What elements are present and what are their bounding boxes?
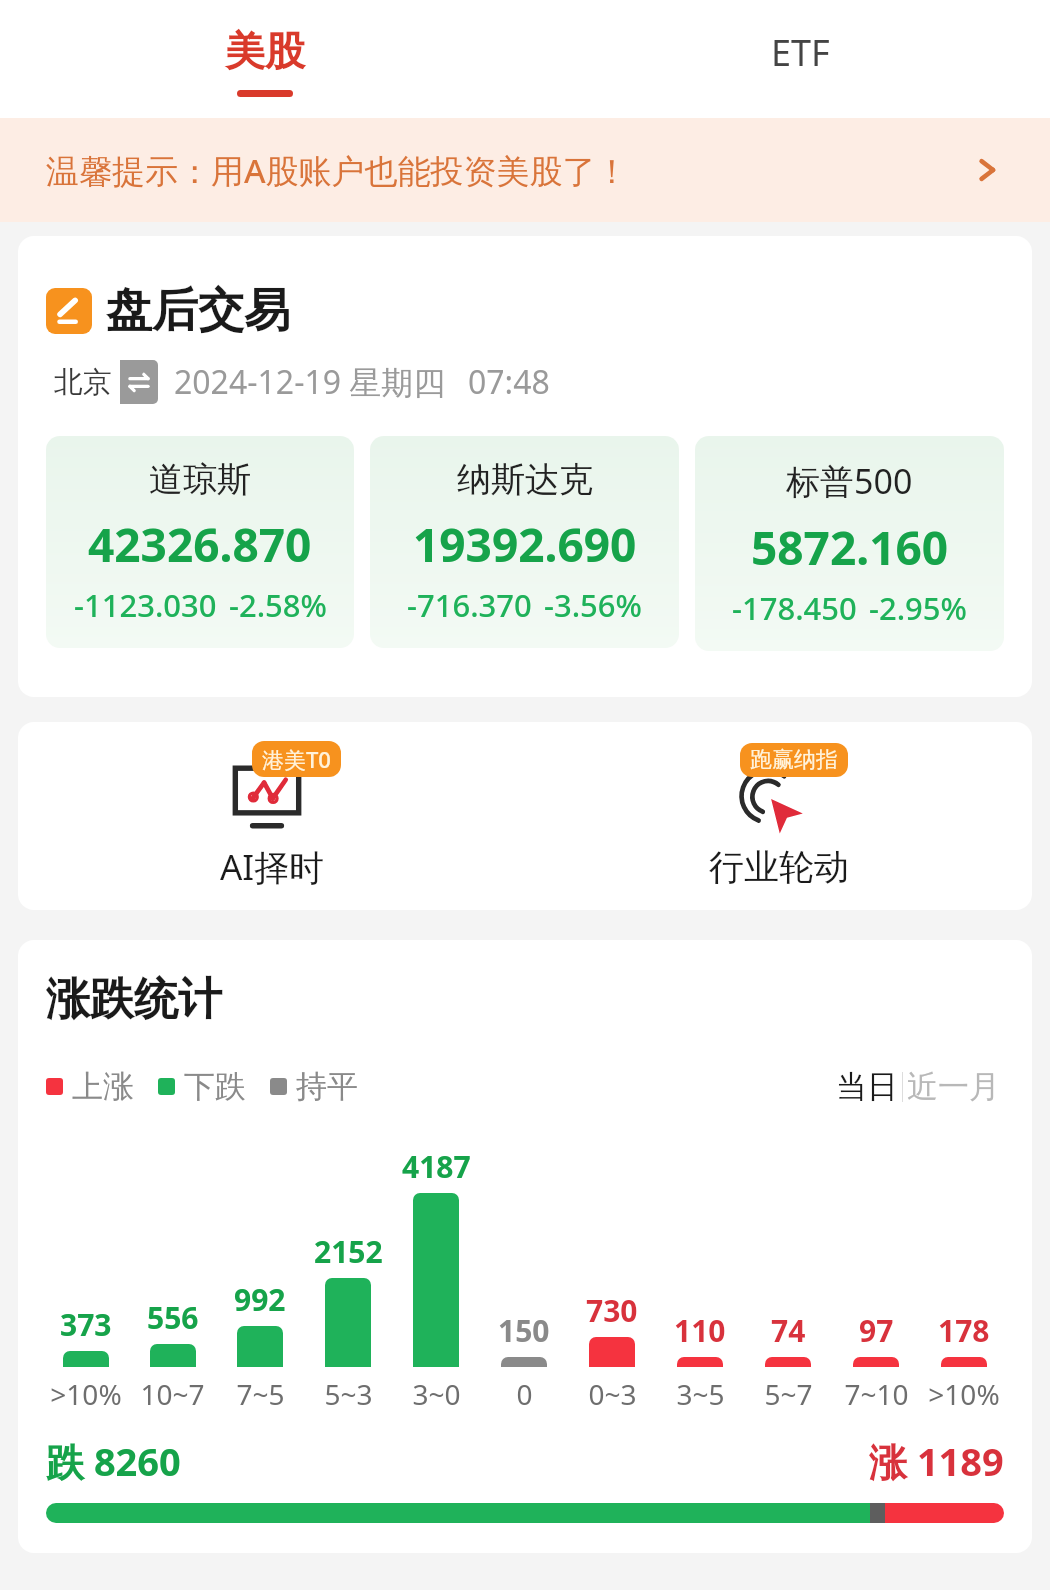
staticText: 42326.870 xyxy=(88,513,312,576)
staticText: 3~0 xyxy=(412,1375,461,1413)
staticText: 纳斯达克 xyxy=(457,458,593,501)
staticText: 5~3 xyxy=(324,1375,373,1413)
staticText: -178.450 xyxy=(732,587,857,629)
staticText: 近一月 xyxy=(907,1067,1000,1106)
staticText: 10~7 xyxy=(140,1375,205,1413)
staticText: 150 xyxy=(498,1310,550,1351)
staticText: 美股 xyxy=(225,26,305,76)
staticText: -716.370 xyxy=(407,584,532,626)
staticText: -2.95% xyxy=(869,587,967,629)
staticText: 0~3 xyxy=(588,1375,637,1413)
staticText: 7~10 xyxy=(844,1375,909,1413)
staticText: -2.58% xyxy=(229,584,327,626)
button[interactable]: 标普500 xyxy=(695,436,1004,651)
staticText: >10% xyxy=(50,1375,122,1413)
staticText: 标普500 xyxy=(786,458,913,504)
staticText: 7~5 xyxy=(236,1375,285,1413)
button[interactable]: ETF xyxy=(715,0,885,90)
staticText: 涨跌统计 xyxy=(46,972,222,1027)
staticText: 北京 xyxy=(54,364,112,401)
staticText: 道琼斯 xyxy=(149,458,251,501)
button[interactable]: 跑赢纳指 xyxy=(525,722,1032,910)
staticText: 跌 8260 xyxy=(46,1435,181,1487)
staticText: 当日 xyxy=(836,1067,898,1106)
staticText: 178 xyxy=(938,1310,990,1351)
staticText: 上涨 xyxy=(72,1067,134,1106)
staticText: 0 xyxy=(516,1375,533,1413)
button[interactable]: 北京 xyxy=(46,360,158,404)
staticText: 730 xyxy=(586,1290,638,1331)
staticText: 盘后交易 xyxy=(106,282,290,340)
button[interactable]: 温馨提示：用A股账户也能投资美股了！ xyxy=(0,118,1050,222)
button[interactable]: 港美T0 xyxy=(18,722,525,910)
button[interactable]: 纳斯达克 xyxy=(370,436,679,648)
staticText: 556 xyxy=(147,1297,199,1338)
staticText: 4187 xyxy=(402,1146,471,1187)
staticText: 373 xyxy=(60,1304,112,1345)
staticText: 5872.160 xyxy=(751,516,949,579)
staticText: 5~7 xyxy=(764,1375,813,1413)
staticText: >10% xyxy=(928,1375,1000,1413)
staticText: 2024-12-19 星期四 xyxy=(174,360,446,404)
staticText: 持平 xyxy=(296,1067,358,1106)
button[interactable]: 近一月 xyxy=(903,1063,1004,1110)
staticText: 涨 1189 xyxy=(869,1435,1004,1487)
staticText: 3~5 xyxy=(676,1375,725,1413)
staticText: AI择时 xyxy=(220,843,325,891)
staticText: 97 xyxy=(859,1310,894,1351)
staticText: -1123.030 xyxy=(74,584,217,626)
staticText: 下跌 xyxy=(184,1067,246,1106)
button[interactable]: 道琼斯 xyxy=(46,436,354,648)
staticText: 行业轮动 xyxy=(709,845,849,889)
staticText: 港美T0 xyxy=(262,744,331,774)
staticText: 07:48 xyxy=(468,360,550,404)
staticText: ETF xyxy=(771,28,830,77)
staticText: 温馨提示：用A股账户也能投资美股了！ xyxy=(46,148,629,193)
button[interactable]: 美股 xyxy=(180,0,350,97)
staticText: 跑赢纳指 xyxy=(750,746,838,774)
staticText: 19392.690 xyxy=(413,513,637,576)
button[interactable]: 当日 xyxy=(832,1063,902,1110)
staticText: 74 xyxy=(771,1310,806,1351)
staticText: 110 xyxy=(674,1310,726,1351)
staticText: 992 xyxy=(234,1279,286,1320)
staticText: 2152 xyxy=(314,1231,383,1272)
staticText: -3.56% xyxy=(544,584,642,626)
